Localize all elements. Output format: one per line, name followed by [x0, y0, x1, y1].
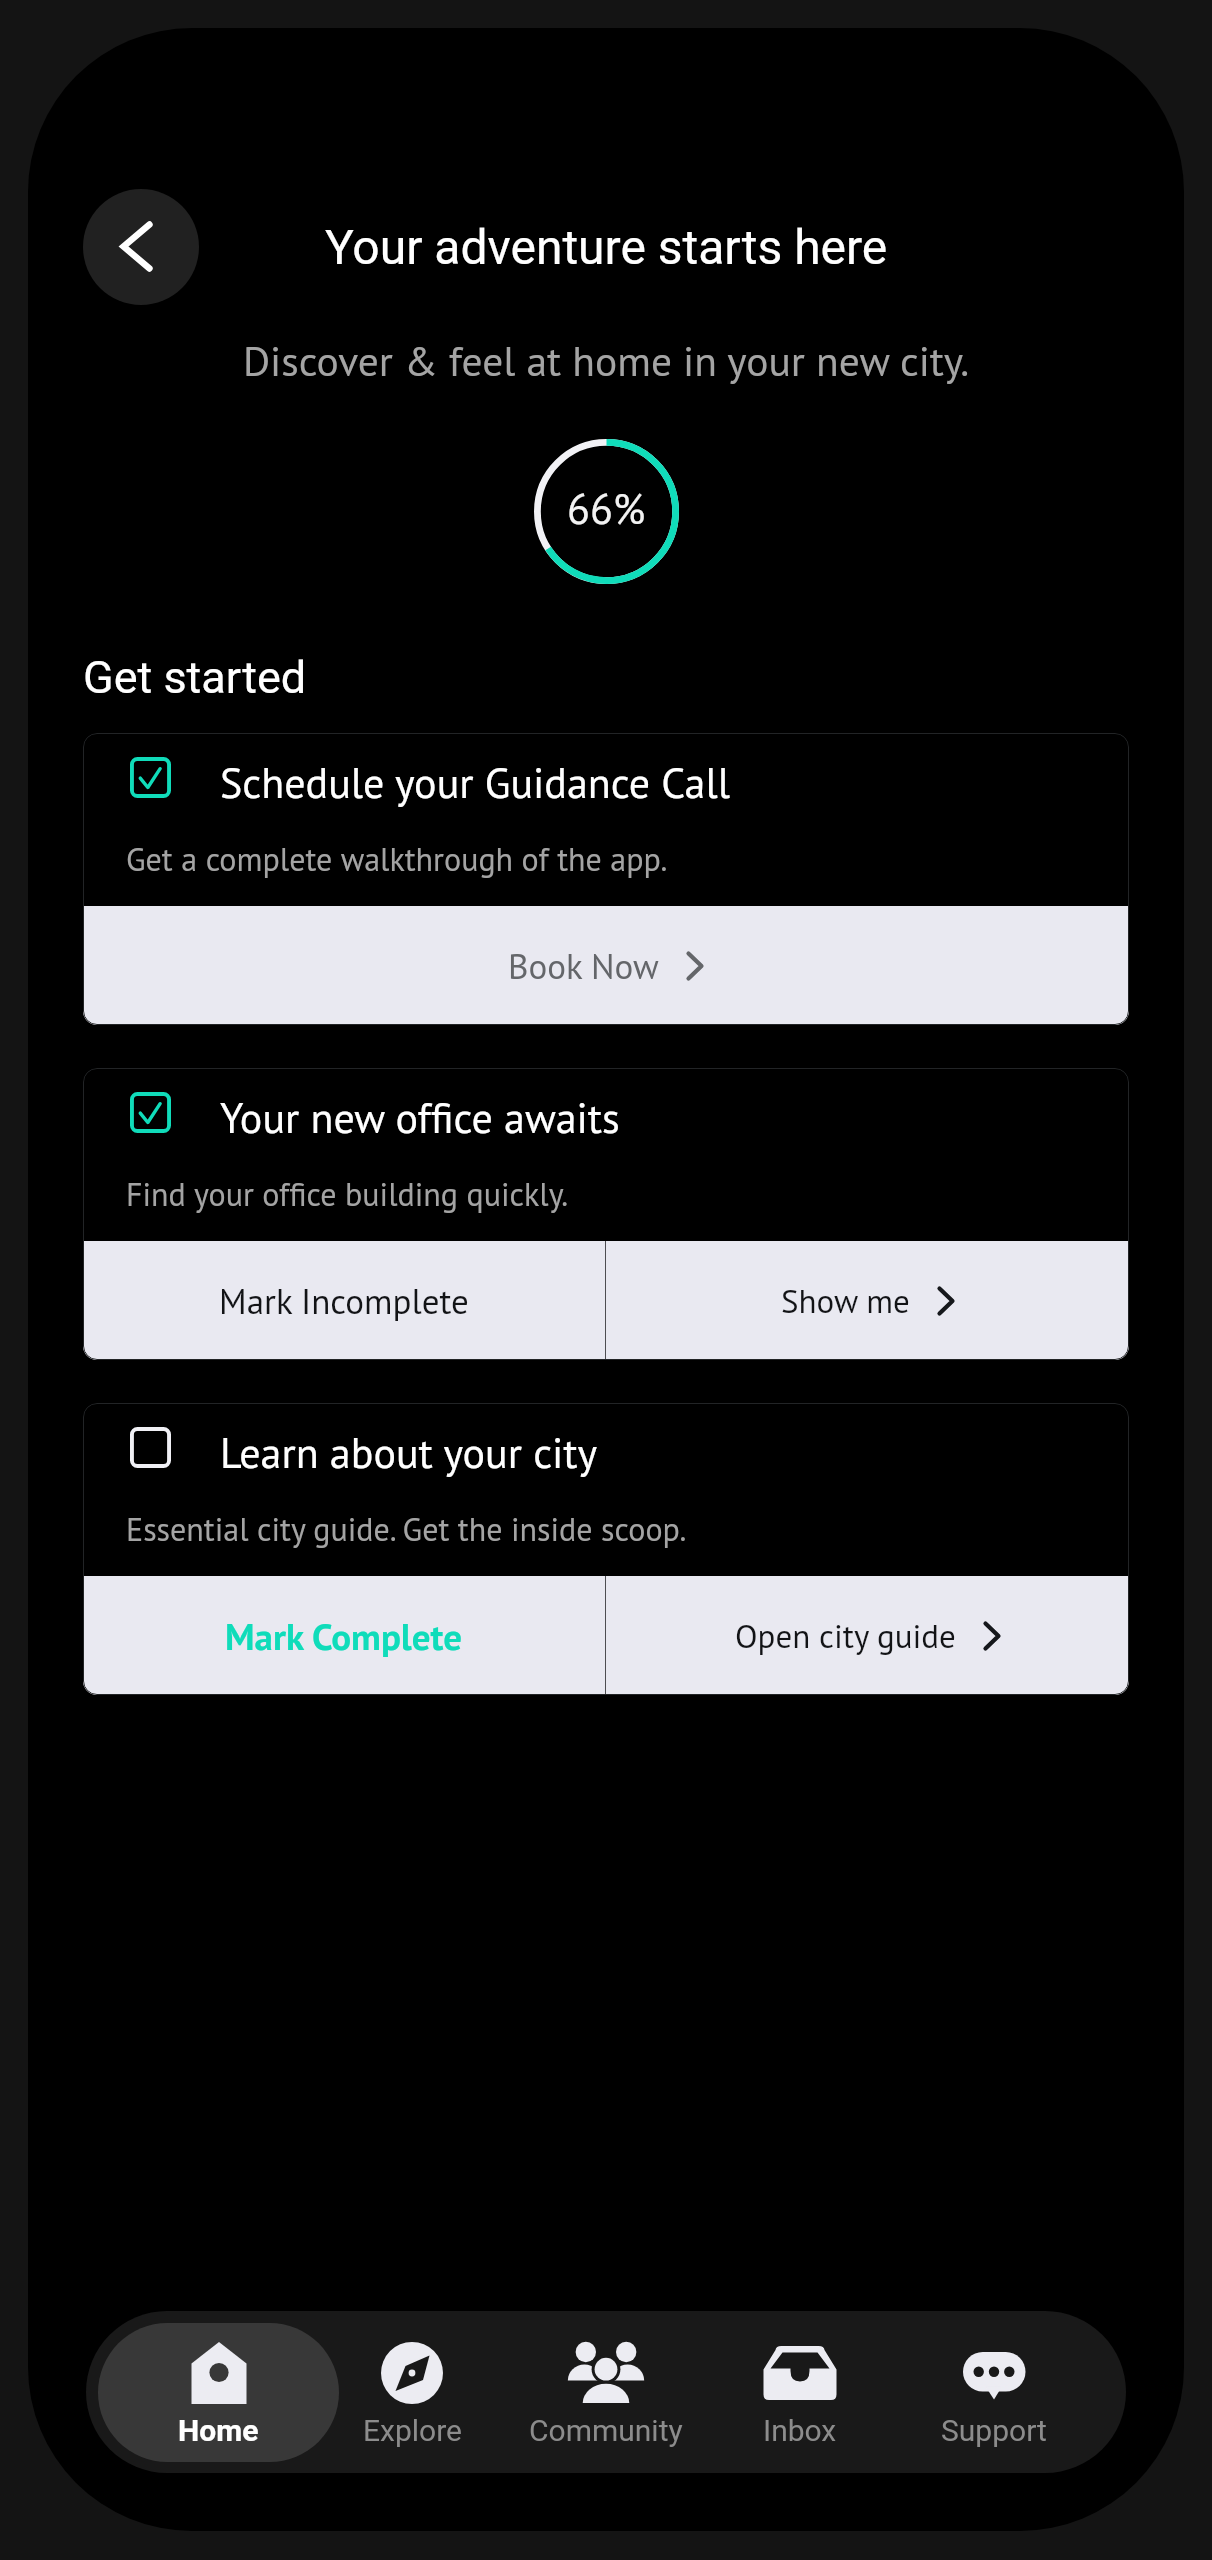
staticText: Show me	[781, 1279, 910, 1322]
button[interactable]: Mark Complete	[83, 1576, 605, 1695]
staticText: Support	[941, 2413, 1047, 2448]
staticText: Schedule your Guidance Call	[220, 755, 730, 809]
button[interactable]: Home	[98, 2323, 339, 2462]
staticText: Home	[178, 2413, 259, 2448]
button[interactable]: Show me	[606, 1241, 1129, 1360]
staticText: 66%	[567, 481, 646, 535]
button[interactable]: Inbox	[703, 2323, 897, 2462]
button[interactable]: Mark Incomplete	[83, 1241, 605, 1360]
button[interactable]: Schedule your Guidance Call	[83, 733, 1129, 1025]
button[interactable]: Open city guide	[606, 1576, 1129, 1695]
staticText: Explore	[363, 2413, 462, 2448]
staticText: Get a complete walkthrough of the app.	[126, 838, 668, 879]
button[interactable]: Your new office awaits	[83, 1068, 1129, 1360]
staticText: Learn about your city	[220, 1425, 598, 1479]
staticText: Community	[529, 2413, 683, 2448]
staticText: Essential city guide. Get the inside sco…	[126, 1508, 687, 1549]
staticText: Open city guide	[735, 1614, 956, 1657]
staticText: Discover & feel at home in your new city…	[28, 334, 1184, 388]
staticText: Find your office building quickly.	[126, 1173, 569, 1214]
button[interactable]: Learn about your city	[83, 1403, 1129, 1695]
staticText: Get started	[83, 651, 307, 704]
staticText: Inbox	[763, 2413, 837, 2448]
button[interactable]: Book Now	[83, 906, 1129, 1025]
button[interactable]: Support	[897, 2323, 1091, 2462]
button[interactable]: Community	[509, 2323, 703, 2462]
staticText: Your new office awaits	[220, 1090, 620, 1144]
staticText: Mark Incomplete	[219, 1278, 469, 1323]
staticText: Mark Complete	[225, 1612, 463, 1660]
button[interactable]: Explore	[315, 2323, 509, 2462]
staticText: Your adventure starts here	[325, 219, 888, 275]
staticText: Book Now	[508, 943, 659, 988]
button[interactable]: Back	[83, 189, 199, 305]
